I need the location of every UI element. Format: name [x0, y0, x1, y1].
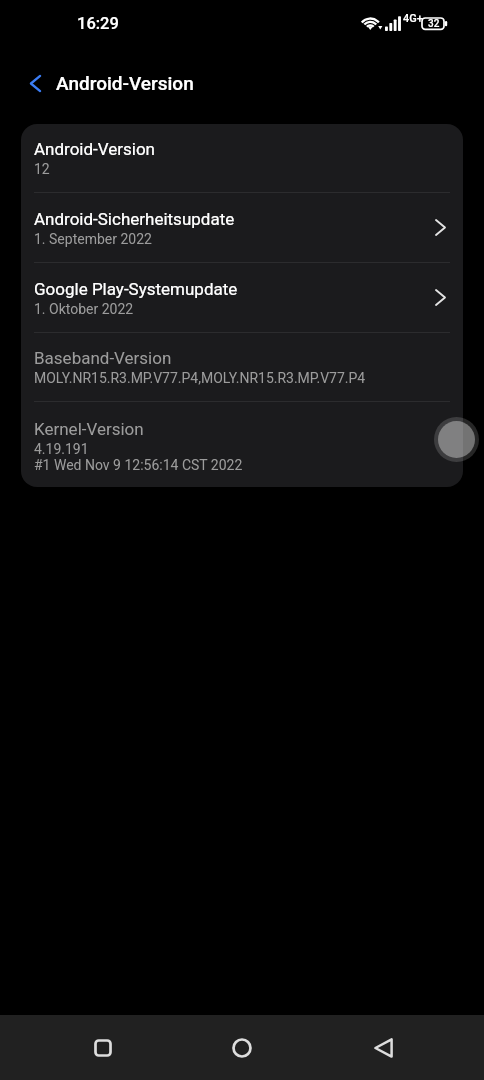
staticText: Baseband-Version — [34, 348, 172, 368]
staticText: Android-Version — [56, 72, 194, 94]
staticText: MOLY.NR15.R3.MP.V77.P4,MOLY.NR15.R3.MP.V… — [34, 370, 366, 386]
staticText: 16:29 — [77, 14, 119, 33]
staticText: 4G+ — [403, 12, 423, 25]
button[interactable]: Back — [349, 1015, 417, 1080]
button[interactable]: Android-Sicherheitsupdate — [21, 193, 463, 262]
staticText: #1 Wed Nov 9 12:56:14 CST 2022 — [34, 457, 243, 473]
button[interactable]: Baseband-Version — [21, 333, 463, 401]
button[interactable]: Recent apps — [69, 1015, 137, 1080]
button[interactable]: Kernel-Version — [21, 402, 463, 487]
button[interactable]: Back — [18, 66, 52, 100]
button[interactable]: Assistive touch — [434, 417, 479, 462]
staticText: Android-Sicherheitsupdate — [34, 209, 235, 229]
staticText: Android-Version — [34, 139, 156, 159]
button[interactable]: Home — [208, 1015, 276, 1080]
staticText: 4.19.191 — [34, 441, 89, 457]
button[interactable]: Android-Version — [21, 124, 463, 192]
staticText: 1. Oktober 2022 — [34, 301, 134, 317]
staticText: Kernel-Version — [34, 419, 144, 439]
staticText: Google Play-Systemupdate — [34, 279, 238, 299]
staticText: 12 — [34, 161, 50, 177]
staticText: 1. September 2022 — [34, 231, 152, 247]
staticText: 32 — [428, 18, 440, 30]
button[interactable]: Google Play-Systemupdate — [21, 263, 463, 332]
